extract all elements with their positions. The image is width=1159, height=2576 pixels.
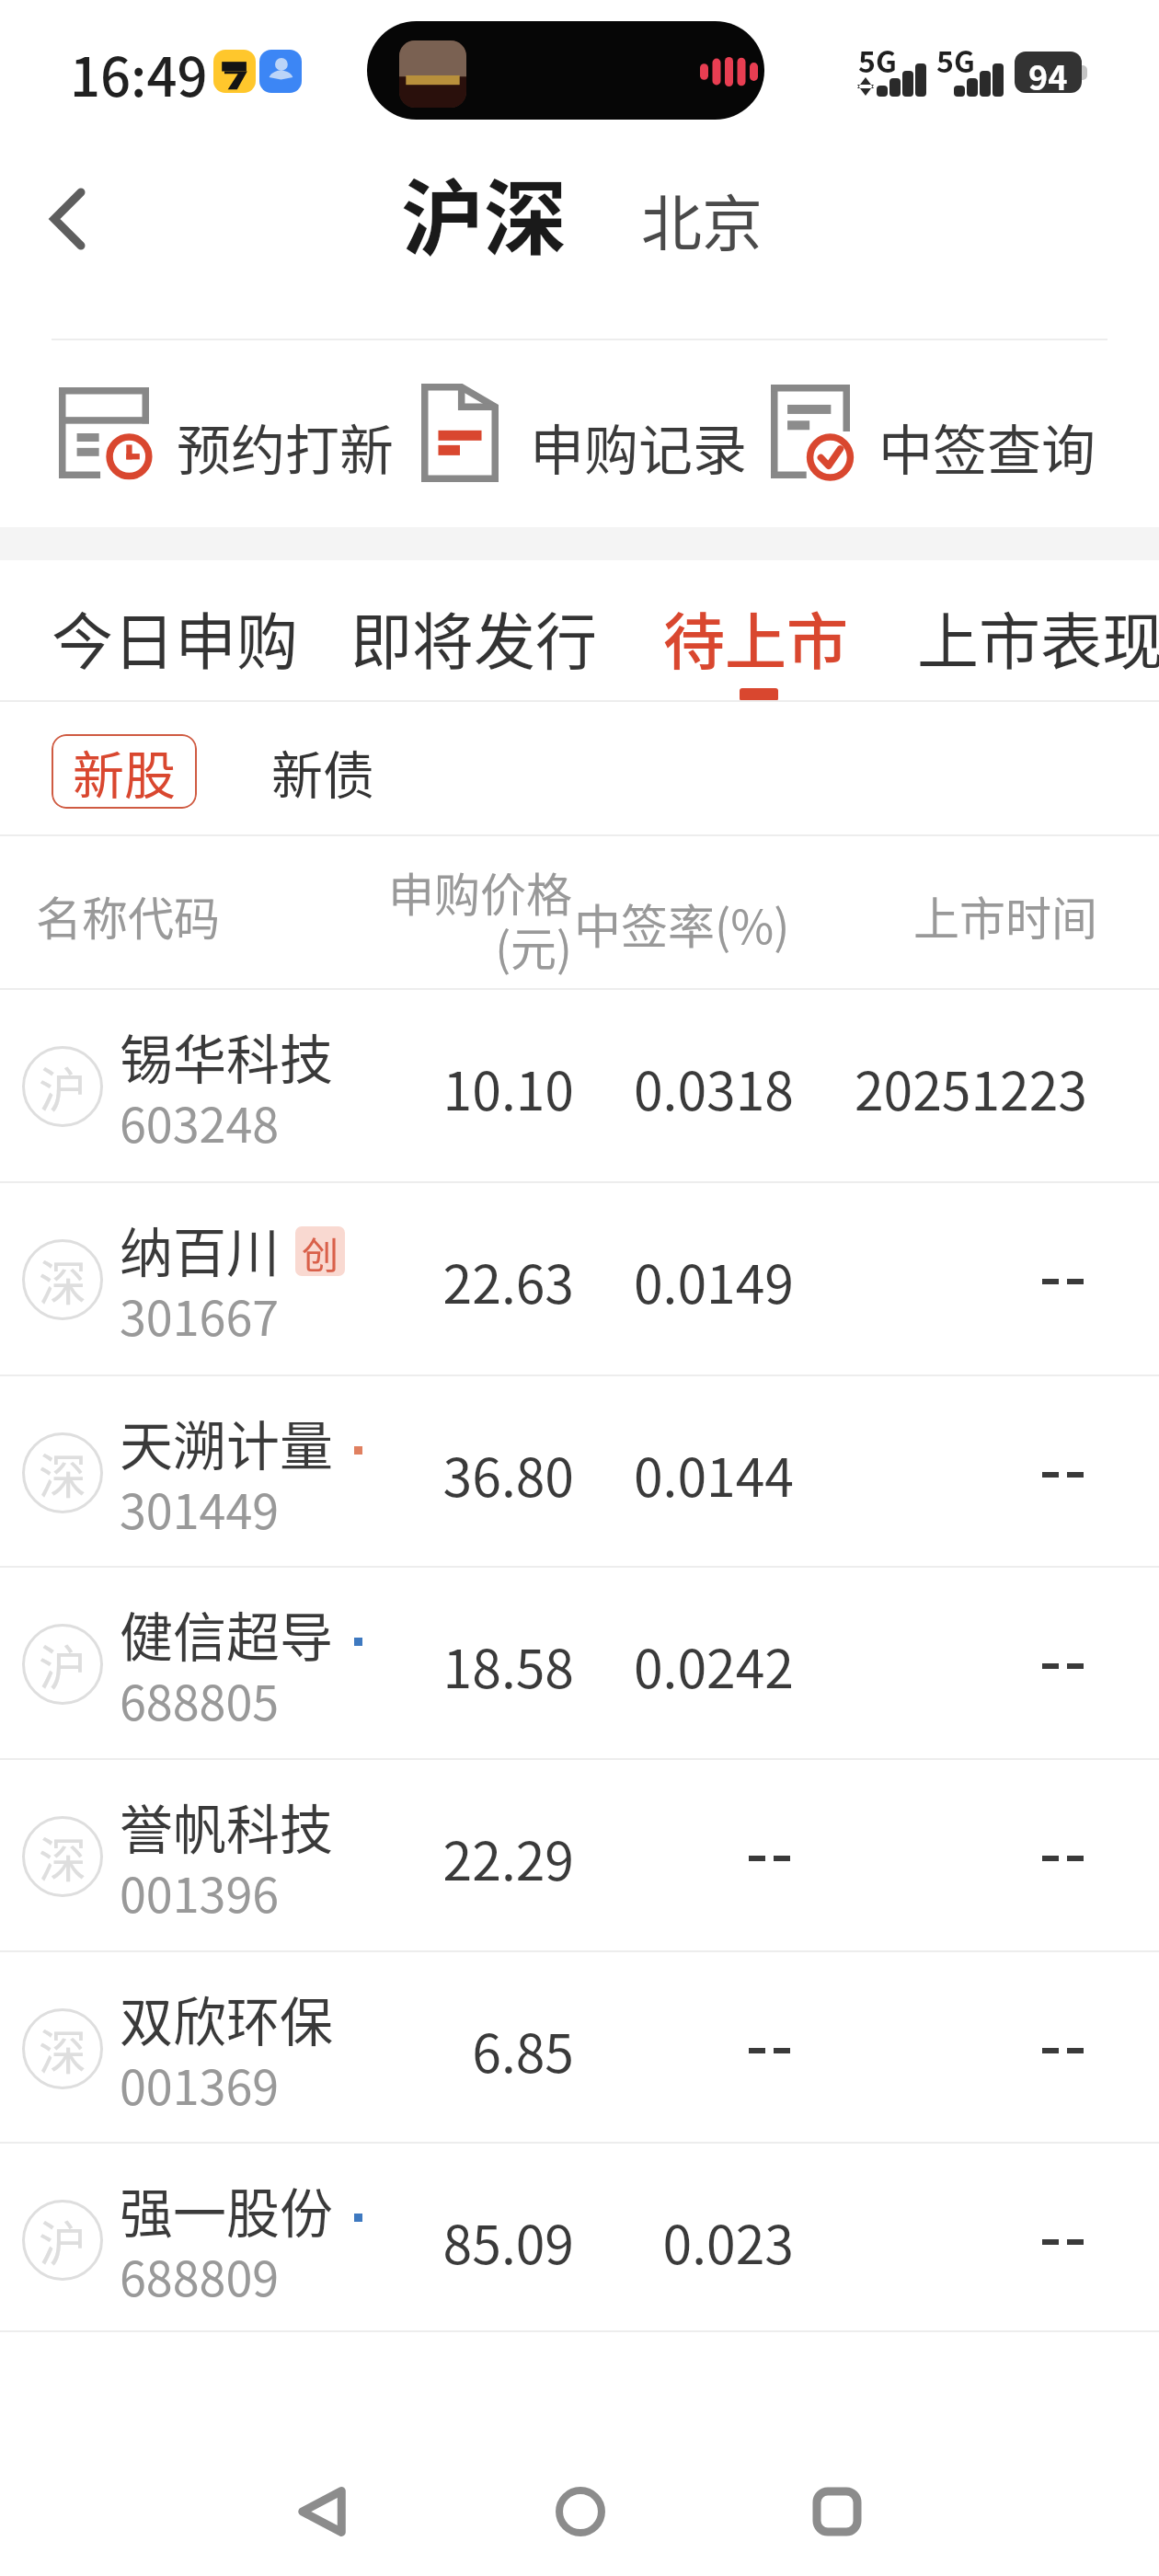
staticText: 深 bbox=[39, 1439, 87, 1508]
button[interactable]: 沪 bbox=[0, 1568, 1159, 1758]
staticText: 5G bbox=[936, 39, 975, 81]
button[interactable]: 深 bbox=[0, 1760, 1159, 1950]
staticText: 誉帆科技 bbox=[120, 1788, 334, 1865]
staticText: 36.80 bbox=[206, 1436, 574, 1512]
staticText: 预约打新 bbox=[177, 408, 395, 486]
staticText: 沪 bbox=[39, 1630, 87, 1699]
staticText: 0.0149 bbox=[426, 1243, 794, 1319]
staticText: 新债 bbox=[271, 734, 374, 809]
button[interactable]: 沪深 bbox=[401, 153, 567, 259]
button[interactable]: 待上市 bbox=[645, 562, 866, 700]
staticText: 85.09 bbox=[206, 2203, 574, 2280]
staticText: 603248 bbox=[120, 1087, 280, 1156]
staticText: 健信超导 bbox=[120, 1595, 334, 1673]
staticText: 创 bbox=[302, 1226, 339, 1276]
staticText: 0.0318 bbox=[426, 1050, 794, 1126]
button[interactable]: 深 bbox=[0, 1376, 1159, 1566]
button[interactable]: 深 bbox=[0, 1183, 1159, 1374]
staticText: 18.58 bbox=[206, 1627, 574, 1704]
button[interactable]: 预约打新 bbox=[42, 368, 408, 502]
staticText: 沪 bbox=[39, 2206, 87, 2275]
staticText: 22.29 bbox=[206, 1820, 574, 1896]
button[interactable]: 今日申购 bbox=[33, 562, 316, 700]
button[interactable]: Recent apps bbox=[800, 2475, 874, 2548]
staticText: 001369 bbox=[120, 2050, 280, 2119]
staticText: 新股 bbox=[73, 734, 176, 809]
staticText: 双欣环保 bbox=[120, 1980, 334, 2057]
staticText: 申购价格 (元) bbox=[204, 858, 572, 980]
button[interactable]: 即将发行 bbox=[332, 562, 615, 700]
staticText: 001396 bbox=[120, 1857, 280, 1926]
staticText: 中签查询 bbox=[878, 408, 1096, 486]
staticText: 0.023 bbox=[426, 2203, 794, 2280]
staticText: 深 bbox=[39, 1246, 87, 1315]
button[interactable]: 北京 bbox=[641, 175, 763, 259]
button[interactable]: 新债 bbox=[247, 734, 398, 809]
staticText: 10.10 bbox=[206, 1050, 574, 1126]
staticText: 沪 bbox=[39, 1052, 87, 1121]
staticText: 0.0242 bbox=[426, 1627, 794, 1704]
staticText: 94 bbox=[1028, 52, 1068, 93]
staticText: 中签率(%) bbox=[574, 890, 790, 958]
staticText: 纳百川 bbox=[120, 1211, 281, 1288]
staticText: 待上市 bbox=[663, 592, 848, 682]
staticText: 5G bbox=[858, 39, 897, 81]
staticText: 今日申购 bbox=[52, 592, 298, 682]
staticText: 20251223 bbox=[627, 1050, 1087, 1126]
staticText: 上市表现 bbox=[917, 592, 1159, 682]
staticText: 0.0144 bbox=[426, 1436, 794, 1512]
staticText: 688809 bbox=[120, 2241, 280, 2310]
button[interactable]: 新股 bbox=[52, 734, 197, 809]
button[interactable]: Back bbox=[285, 2475, 359, 2548]
button[interactable]: 沪 bbox=[0, 990, 1159, 1181]
staticText: 6.85 bbox=[206, 2012, 574, 2088]
button[interactable]: Back bbox=[13, 164, 121, 274]
staticText: 即将发行 bbox=[350, 592, 597, 682]
button[interactable]: 深 bbox=[0, 1952, 1159, 2142]
staticText: 名称代码 bbox=[36, 882, 220, 949]
staticText: 北京 bbox=[641, 175, 763, 259]
staticText: 沪深 bbox=[401, 153, 567, 259]
staticText: 深 bbox=[39, 1823, 87, 1892]
button[interactable]: Home bbox=[544, 2475, 617, 2548]
staticText: 16:49 bbox=[70, 35, 208, 112]
staticText: 上市时间 bbox=[729, 882, 1097, 949]
staticText: 申购记录 bbox=[530, 408, 748, 486]
staticText: 天溯计量 bbox=[120, 1404, 334, 1481]
staticText: 301667 bbox=[120, 1281, 280, 1350]
staticText: 301449 bbox=[120, 1474, 280, 1543]
staticText: 22.63 bbox=[206, 1243, 574, 1319]
staticText: 锡华科技 bbox=[120, 1018, 334, 1095]
button[interactable]: 申购记录 bbox=[405, 368, 762, 502]
staticText: 强一股份 bbox=[120, 2171, 334, 2248]
button[interactable]: 中签查询 bbox=[754, 368, 1110, 502]
staticText: 深 bbox=[39, 2015, 87, 2084]
button[interactable]: 上市表现 bbox=[899, 562, 1159, 700]
button[interactable]: 沪 bbox=[0, 2144, 1159, 2330]
staticText: 688805 bbox=[120, 1665, 280, 1734]
